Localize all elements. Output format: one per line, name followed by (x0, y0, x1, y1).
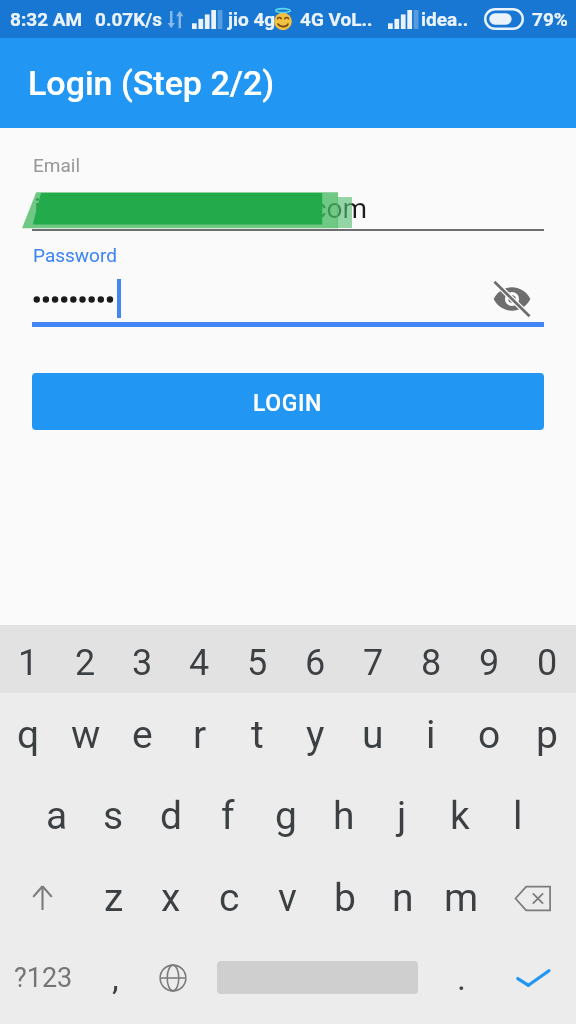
button[interactable]: e (114, 693, 171, 775)
button[interactable]: v (258, 857, 316, 939)
button[interactable]: a (28, 775, 85, 857)
staticText: 6 (305, 642, 326, 684)
staticText: h (333, 793, 355, 839)
staticText: v (278, 875, 297, 921)
button[interactable]: , (86, 939, 144, 1024)
staticText: 5 (247, 642, 268, 684)
button[interactable]: n (374, 857, 432, 939)
staticText: g (275, 793, 297, 839)
staticText: 4 (189, 642, 210, 684)
staticText: t (251, 712, 264, 758)
button[interactable]: p (518, 693, 576, 775)
staticText: Login (Step 2/2) (28, 63, 275, 103)
button[interactable]: 0 (518, 625, 576, 693)
staticText: LOGIN (253, 390, 323, 417)
staticText: , (112, 958, 119, 998)
button[interactable]: x (142, 857, 200, 939)
staticText: b (334, 875, 356, 921)
staticText: 0.07K/s (95, 8, 163, 30)
staticText: 9 (479, 642, 500, 684)
button[interactable]: i (402, 693, 460, 775)
staticText: 0 (537, 642, 558, 684)
button[interactable]: q (0, 693, 57, 775)
staticText: 4G VoL.. (300, 8, 373, 30)
button[interactable]: w (57, 693, 114, 775)
button[interactable]: Shift (0, 857, 85, 939)
staticText: q (17, 712, 40, 758)
button[interactable]: j (373, 775, 431, 857)
button[interactable]: 9 (460, 625, 518, 693)
staticText: d (160, 793, 182, 839)
staticText: x (161, 875, 181, 921)
staticText: iamonlineuser@gmail.com (34, 192, 368, 225)
button[interactable]: z (85, 857, 142, 939)
staticText: j (397, 793, 407, 839)
staticText: y (306, 712, 325, 758)
staticText: 3 (132, 642, 153, 684)
staticText: Email (33, 154, 81, 176)
button[interactable]: ?123 (0, 939, 86, 1024)
staticText: s (103, 793, 124, 839)
staticText: r (193, 712, 207, 758)
staticText: Password (33, 244, 117, 266)
button[interactable]: u (344, 693, 402, 775)
staticText: c (219, 875, 240, 921)
staticText: a (46, 793, 68, 839)
staticText: 79% (532, 8, 568, 30)
staticText: jio 4g (228, 8, 276, 30)
staticText: e (132, 712, 153, 758)
button[interactable]: 7 (344, 625, 402, 693)
button[interactable]: Enter (490, 939, 576, 1024)
staticText: n (392, 875, 414, 921)
button[interactable]: Change language (144, 939, 202, 1024)
button[interactable]: l (489, 775, 547, 857)
staticText: k (450, 793, 470, 839)
staticText: idea.. (421, 8, 469, 30)
staticText: w (71, 712, 101, 758)
button[interactable]: h (315, 775, 373, 857)
button[interactable]: 2 (57, 625, 114, 693)
button[interactable]: Space (202, 939, 432, 1024)
staticText: o (478, 712, 501, 758)
staticText: u (362, 712, 384, 758)
button[interactable]: 3 (114, 625, 171, 693)
button[interactable]: Backspace (490, 857, 576, 939)
button[interactable]: f (199, 775, 257, 857)
button[interactable]: r (171, 693, 228, 775)
button[interactable]: g (257, 775, 315, 857)
button[interactable]: d (142, 775, 199, 857)
staticText: . (457, 958, 466, 998)
staticText: l (513, 793, 523, 839)
button[interactable]: c (200, 857, 258, 939)
button[interactable]: m (432, 857, 490, 939)
button[interactable]: 1 (0, 625, 57, 693)
staticText: 8:32 AM (10, 8, 83, 30)
button[interactable]: y (286, 693, 344, 775)
staticText: z (104, 875, 124, 921)
staticText: 7 (363, 642, 384, 684)
button[interactable]: 5 (228, 625, 286, 693)
button[interactable]: LOGIN (32, 373, 544, 430)
staticText: m (444, 875, 479, 921)
button[interactable]: . (432, 939, 490, 1024)
staticText: 2 (75, 642, 96, 684)
button[interactable]: t (228, 693, 286, 775)
button[interactable]: 8 (402, 625, 460, 693)
staticText: ?123 (14, 962, 73, 994)
staticText: 8 (421, 642, 442, 684)
staticText: i (426, 712, 436, 758)
button[interactable]: k (431, 775, 489, 857)
staticText: p (536, 712, 558, 758)
staticText: 1 (18, 642, 39, 684)
button[interactable]: s (85, 775, 142, 857)
button[interactable]: 4 (171, 625, 228, 693)
button[interactable]: b (316, 857, 374, 939)
button[interactable]: o (460, 693, 518, 775)
button[interactable]: Toggle password visibility (488, 275, 536, 323)
button[interactable]: 6 (286, 625, 344, 693)
staticText: f (221, 793, 235, 839)
